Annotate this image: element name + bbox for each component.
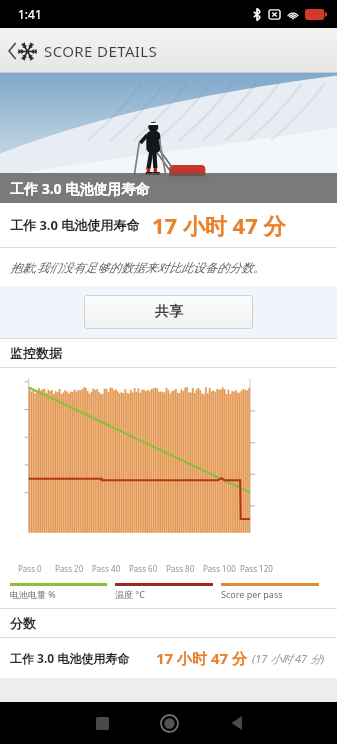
staticText: Pass 20 bbox=[55, 563, 84, 574]
staticText: 工作 3.0 电池使用寿命 bbox=[10, 216, 140, 234]
staticText: Pass 60 bbox=[129, 563, 158, 574]
staticText: Pass 0 bbox=[18, 563, 42, 574]
staticText: (17 小时 47 分) bbox=[252, 651, 325, 666]
staticText: 电池电量 % bbox=[10, 588, 56, 600]
staticText: 17 小时 47 分 bbox=[152, 210, 286, 240]
button[interactable]: 工作 3.0 电池使用寿命 bbox=[0, 638, 337, 678]
button[interactable]: Back bbox=[4, 41, 162, 61]
staticText: 监控数据 bbox=[10, 345, 62, 361]
staticText: 1:41 bbox=[18, 6, 42, 22]
staticText: Score per pass bbox=[221, 588, 283, 600]
staticText: 抱歉,我们没有足够的数据来对比此设备的分数。 bbox=[10, 259, 266, 275]
button[interactable]: Back bbox=[203, 702, 270, 744]
button[interactable]: Recent apps bbox=[68, 702, 136, 744]
staticText: 共享 bbox=[155, 303, 183, 321]
staticText: Pass 100 bbox=[203, 563, 236, 574]
staticText: 温度 °C bbox=[115, 588, 145, 600]
staticText: Pass 80 bbox=[166, 563, 195, 574]
staticText: SCORE DETAILS bbox=[44, 41, 158, 61]
staticText: Pass 40 bbox=[92, 563, 121, 574]
button[interactable]: Home bbox=[136, 702, 203, 744]
staticText: 工作 3.0 电池使用寿命 bbox=[10, 179, 150, 198]
button[interactable]: 共享 bbox=[84, 295, 253, 329]
staticText: Pass 120 bbox=[240, 563, 273, 574]
staticText: 17 小时 47 分 bbox=[156, 648, 248, 668]
staticText: 分数 bbox=[10, 615, 36, 631]
staticText: 工作 3.0 电池使用寿命 bbox=[10, 650, 130, 666]
